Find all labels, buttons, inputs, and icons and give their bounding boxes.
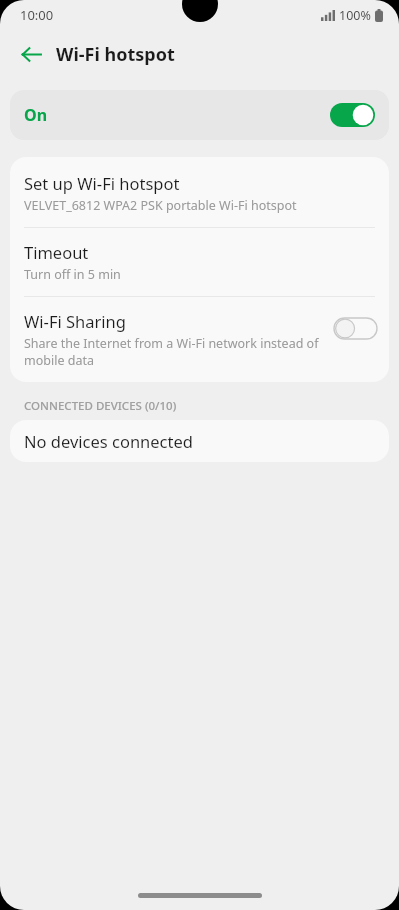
staticText: Turn off in 5 min bbox=[24, 266, 121, 283]
staticText: Share the Internet from a Wi-Fi network … bbox=[24, 335, 328, 368]
staticText: Wi-Fi Sharing bbox=[24, 310, 126, 332]
button[interactable]: Wi-Fi Sharing toggle bbox=[334, 318, 377, 339]
staticText: On bbox=[24, 104, 48, 126]
button[interactable]: Set up Wi-Fi hotspot bbox=[10, 157, 389, 227]
staticText: 100% bbox=[339, 7, 371, 24]
staticText: Set up Wi-Fi hotspot bbox=[24, 172, 180, 194]
staticText: 10:00 bbox=[20, 6, 54, 24]
staticText: CONNECTED DEVICES (0/10) bbox=[24, 398, 177, 414]
staticText: No devices connected bbox=[24, 430, 193, 452]
button[interactable]: Back bbox=[14, 37, 48, 71]
staticText: VELVET_6812 WPA2 PSK portable Wi-Fi hots… bbox=[24, 197, 297, 214]
button[interactable]: Wi-Fi Sharing bbox=[10, 297, 389, 382]
staticText: Wi-Fi hotspot bbox=[56, 42, 175, 67]
button[interactable]: On bbox=[10, 90, 389, 140]
button[interactable]: Timeout bbox=[10, 228, 389, 296]
staticText: Timeout bbox=[24, 241, 89, 263]
button[interactable]: No devices connected bbox=[10, 420, 389, 462]
